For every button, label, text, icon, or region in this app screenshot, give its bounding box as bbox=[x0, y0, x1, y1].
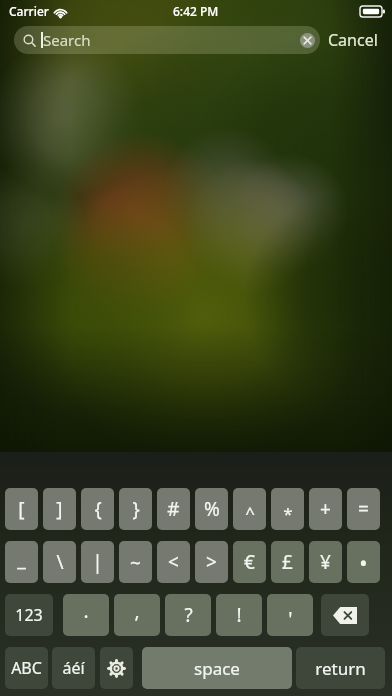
button[interactable]: Keyboard settings bbox=[100, 647, 133, 689]
button[interactable]: • bbox=[347, 541, 380, 583]
staticText: < bbox=[168, 549, 179, 575]
staticText: space bbox=[194, 657, 240, 680]
staticText: , bbox=[134, 598, 140, 624]
button[interactable]: . bbox=[63, 594, 109, 636]
button[interactable]: Backspace bbox=[321, 594, 369, 636]
button[interactable]: | bbox=[81, 541, 114, 583]
button[interactable]: > bbox=[195, 541, 228, 583]
button[interactable]: ^ bbox=[233, 488, 266, 530]
button[interactable]: , bbox=[114, 594, 160, 636]
button[interactable]: space bbox=[142, 647, 292, 689]
button[interactable]: \ bbox=[43, 541, 76, 583]
staticText: return bbox=[315, 657, 366, 680]
button[interactable]: € bbox=[233, 541, 266, 583]
staticText: ' bbox=[288, 606, 293, 632]
button[interactable]: % bbox=[195, 488, 228, 530]
staticText: € bbox=[244, 549, 255, 575]
staticText: ! bbox=[236, 602, 242, 628]
button[interactable]: < bbox=[157, 541, 190, 583]
staticText: 6:42 PM bbox=[173, 3, 219, 19]
staticText: | bbox=[92, 549, 103, 575]
button[interactable]: { bbox=[81, 488, 114, 530]
button[interactable]: ¥ bbox=[309, 541, 342, 583]
button[interactable]: Search bbox=[14, 26, 320, 54]
staticText: ] bbox=[56, 496, 63, 522]
staticText: • bbox=[359, 547, 368, 577]
button[interactable]: Cancel bbox=[328, 29, 378, 51]
button[interactable]: Clear text bbox=[294, 27, 320, 53]
button[interactable]: _ bbox=[5, 541, 38, 583]
button[interactable]: 123 bbox=[5, 594, 53, 636]
button[interactable]: return bbox=[296, 647, 385, 689]
button[interactable]: ' bbox=[267, 594, 313, 636]
staticText: * bbox=[283, 502, 293, 525]
staticText: Carrier bbox=[9, 3, 49, 19]
button[interactable]: = bbox=[347, 488, 380, 530]
staticText: = bbox=[358, 496, 369, 522]
staticText: 123 bbox=[15, 604, 43, 626]
staticText: _ bbox=[17, 546, 26, 572]
button[interactable]: + bbox=[309, 488, 342, 530]
staticText: £ bbox=[282, 549, 293, 575]
staticText: # bbox=[167, 496, 180, 522]
staticText: ^ bbox=[245, 501, 255, 524]
button[interactable]: ~ bbox=[119, 541, 152, 583]
button[interactable]: * bbox=[271, 488, 304, 530]
button[interactable]: ] bbox=[43, 488, 76, 530]
staticText: áéí bbox=[62, 657, 85, 679]
staticText: { bbox=[94, 496, 102, 522]
staticText: [ bbox=[18, 496, 25, 522]
button[interactable]: áéí bbox=[52, 647, 95, 689]
button[interactable]: [ bbox=[5, 488, 38, 530]
staticText: ABC bbox=[11, 657, 42, 679]
button[interactable]: £ bbox=[271, 541, 304, 583]
button[interactable]: ABC bbox=[5, 647, 48, 689]
staticText: \ bbox=[56, 549, 64, 575]
staticText: + bbox=[320, 496, 331, 522]
staticText: Cancel bbox=[328, 29, 378, 51]
staticText: . bbox=[83, 598, 89, 624]
button[interactable]: ! bbox=[216, 594, 262, 636]
staticText: } bbox=[132, 496, 140, 522]
staticText: % bbox=[204, 496, 220, 522]
button[interactable]: ? bbox=[165, 594, 211, 636]
staticText: Search bbox=[43, 30, 91, 50]
button[interactable]: # bbox=[157, 488, 190, 530]
staticText: > bbox=[206, 549, 217, 575]
staticText: ~ bbox=[130, 550, 141, 576]
staticText: ¥ bbox=[320, 549, 331, 575]
staticText: ? bbox=[184, 602, 193, 628]
button[interactable]: } bbox=[119, 488, 152, 530]
